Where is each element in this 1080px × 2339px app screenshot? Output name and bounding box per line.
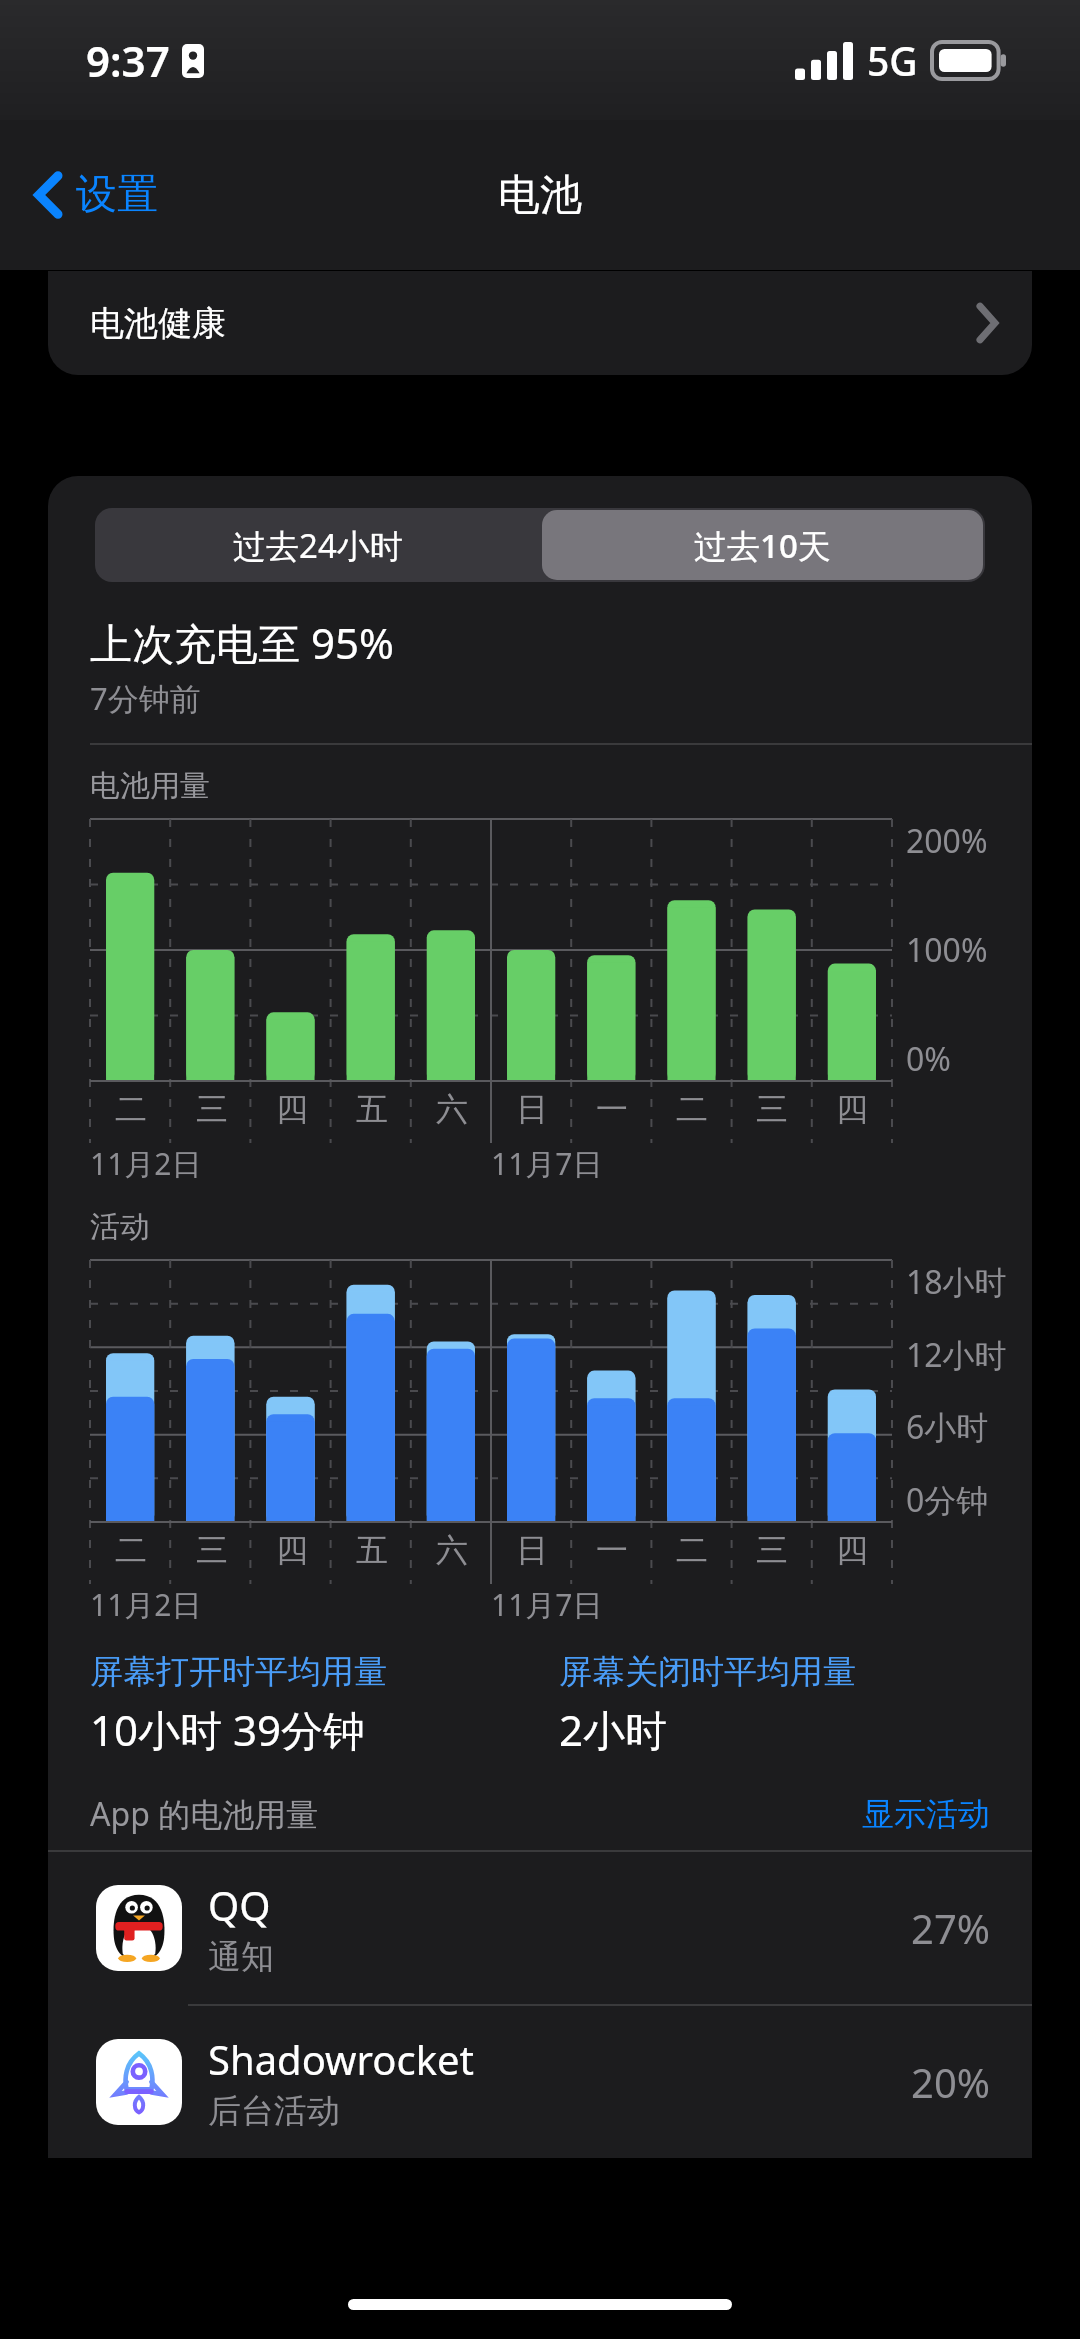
staticText: 二 (676, 1089, 708, 1129)
staticText: 9:37 (86, 32, 170, 89)
staticText: 通知 (208, 1936, 274, 1978)
staticText: 四 (276, 1530, 308, 1570)
staticText: 六 (436, 1530, 468, 1570)
staticText: 后台活动 (208, 2090, 340, 2132)
staticText: 7分钟前 (90, 677, 201, 719)
staticText: 电池健康 (90, 302, 226, 345)
button[interactable]: Shadowrocket (48, 2006, 1032, 2158)
staticText: 日 (516, 1089, 548, 1129)
button[interactable]: 电池健康 (48, 271, 1032, 375)
staticText: 200% (906, 819, 988, 863)
staticText: 四 (836, 1089, 868, 1129)
staticText: 过去24小时 (233, 523, 403, 568)
button[interactable]: QQ (48, 1852, 1032, 2004)
staticText: 活动 (90, 1208, 150, 1246)
staticText: 三 (756, 1530, 788, 1570)
staticText: 100% (906, 928, 988, 972)
staticText: QQ (208, 1878, 271, 1932)
button[interactable]: 过去10天 (542, 510, 983, 580)
staticText: 四 (836, 1530, 868, 1570)
staticText: 日 (516, 1530, 548, 1570)
staticText: 12小时 (906, 1333, 1007, 1377)
staticText: 过去10天 (694, 523, 831, 568)
button[interactable]: 屏幕打开时平均用量 (90, 1651, 559, 1758)
button[interactable]: 设置 (26, 159, 166, 231)
staticText: 11月2日 (90, 1584, 202, 1625)
staticText: 2小时 (559, 1701, 668, 1758)
staticText: 五 (356, 1530, 388, 1570)
staticText: 三 (196, 1530, 228, 1570)
staticText: 一 (596, 1089, 628, 1129)
staticText: 6小时 (906, 1405, 989, 1449)
other: Open battery health (976, 303, 998, 343)
button[interactable]: 显示活动 (862, 1794, 990, 1834)
staticText: 0分钟 (906, 1478, 989, 1522)
staticText: 11月2日 (90, 1143, 202, 1184)
staticText: 11月7日 (491, 1143, 603, 1184)
staticText: 五 (356, 1089, 388, 1129)
staticText: 二 (676, 1530, 708, 1570)
staticText: 电池 (498, 169, 582, 222)
staticText: 二 (115, 1530, 147, 1570)
staticText: 六 (436, 1089, 468, 1129)
button[interactable]: 屏幕关闭时平均用量 (559, 1651, 1002, 1758)
staticText: Shadowrocket (208, 2032, 475, 2086)
staticText: 四 (276, 1089, 308, 1129)
staticText: 三 (196, 1089, 228, 1129)
staticText: 设置 (76, 169, 158, 221)
staticText: 5G (867, 34, 918, 87)
staticText: 屏幕关闭时平均用量 (559, 1651, 856, 1693)
staticText: 屏幕打开时平均用量 (90, 1651, 387, 1693)
staticText: 11月7日 (491, 1584, 603, 1625)
staticText: 一 (596, 1530, 628, 1570)
button[interactable]: 过去24小时 (95, 508, 540, 582)
staticText: App 的电池用量 (90, 1792, 319, 1836)
staticText: 10小时 39分钟 (90, 1701, 366, 1758)
staticText: 电池用量 (90, 767, 210, 805)
staticText: 0% (906, 1037, 951, 1081)
staticText: 上次充电至 95% (90, 614, 394, 671)
staticText: 二 (115, 1089, 147, 1129)
staticText: 18小时 (906, 1260, 1007, 1304)
staticText: 27% (911, 1901, 990, 1955)
staticText: 显示活动 (862, 1794, 990, 1834)
staticText: 三 (756, 1089, 788, 1129)
staticText: 20% (911, 2055, 990, 2109)
